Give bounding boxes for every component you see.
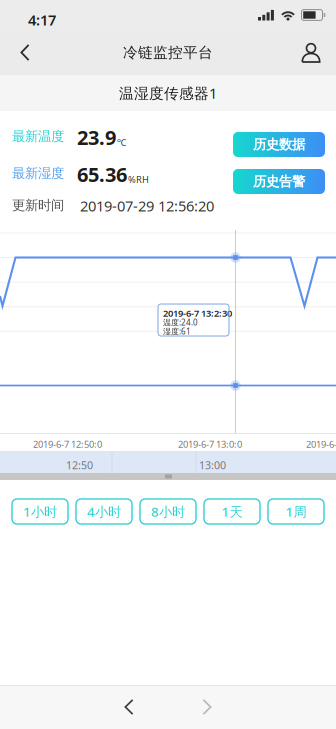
staticText: 历史告警 <box>253 173 305 190</box>
staticText: 8小时 <box>151 503 185 520</box>
staticText: 最新湿度 <box>12 165 64 181</box>
staticText: 最新温度 <box>12 128 64 144</box>
staticText: 冷链监控平台 <box>123 43 213 61</box>
button[interactable]: 返回 <box>3 30 47 75</box>
button[interactable]: 1小时 <box>12 499 68 524</box>
button[interactable]: 账户 <box>289 30 333 75</box>
staticText: 2019-6-7 12:50:0 <box>33 438 102 450</box>
staticText: 1天 <box>221 503 242 520</box>
staticText: 湿度:61 <box>163 326 191 337</box>
staticText: 温度:24.0 <box>163 317 198 328</box>
button[interactable]: 历史数据 <box>233 132 325 157</box>
staticText: 历史数据 <box>253 136 305 153</box>
button[interactable]: 历史告警 <box>233 169 325 194</box>
button[interactable]: 8小时 <box>140 499 196 524</box>
staticText: 2019-6-7 13:2:30 <box>163 307 232 319</box>
staticText: 65.36 <box>77 161 127 188</box>
staticText: 2019-6-7 13:0:0 <box>178 438 242 450</box>
staticText: 23.9 <box>77 124 116 151</box>
staticText: %RH <box>128 173 149 186</box>
staticText: 更新时间 <box>12 197 64 213</box>
button[interactable]: 4小时 <box>76 499 132 524</box>
button[interactable]: 前进 <box>181 685 233 728</box>
staticText: 4小时 <box>87 503 121 520</box>
staticText: ℃ <box>117 136 126 149</box>
button[interactable]: 1周 <box>268 499 324 524</box>
staticText: 4:17 <box>28 10 56 29</box>
staticText: 13:00 <box>199 458 226 472</box>
button[interactable]: 1天 <box>204 499 260 524</box>
staticText: 1小时 <box>23 503 57 520</box>
staticText: 2019-6- <box>306 438 336 450</box>
staticText: 2019-07-29 12:56:20 <box>80 196 214 215</box>
button[interactable]: 后退 <box>103 685 155 728</box>
staticText: 1周 <box>285 503 306 520</box>
staticText: 温湿度传感器1 <box>119 83 217 103</box>
staticText: 12:50 <box>66 458 93 472</box>
